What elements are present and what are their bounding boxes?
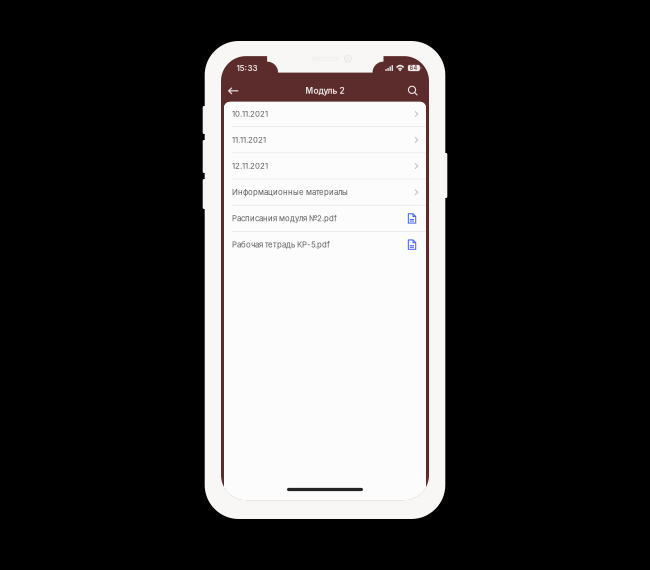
button[interactable]: Search [402,82,429,100]
button[interactable]: 11.11.2021 [224,127,426,153]
staticText: Модуль 2 [305,86,344,96]
button[interactable]: Расписания модуля №2.pdf [224,206,426,232]
staticText: Рабочая тетрадь КР-5.pdf [232,240,330,249]
button[interactable]: Back [221,82,245,100]
staticText: 64 [409,65,417,71]
staticText: Расписания модуля №2.pdf [232,214,337,223]
staticText: Информационные материалы [232,188,348,197]
staticText: 12.11.2021 [232,161,268,171]
staticText: 10.11.2021 [232,109,268,119]
button[interactable]: 12.11.2021 [224,153,426,180]
staticText: 11.11.2021 [232,135,266,145]
button[interactable]: Рабочая тетрадь КР-5.pdf [224,232,426,258]
button[interactable]: Информационные материалы [224,180,426,206]
staticText: 15:33 [236,63,257,73]
button[interactable]: 10.11.2021 [224,102,426,127]
